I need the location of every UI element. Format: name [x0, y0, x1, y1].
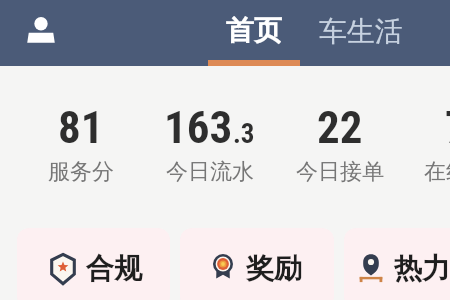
staticText: 热力	[394, 251, 450, 286]
staticText: 服务分	[48, 158, 114, 186]
staticText: 合规	[86, 251, 142, 286]
staticText: 7	[445, 101, 450, 154]
staticText: 今日接单	[296, 158, 384, 186]
staticText: 22	[317, 101, 363, 154]
button[interactable]: 车生活	[308, 0, 414, 66]
button[interactable]: 热力	[344, 228, 450, 300]
staticText: 81	[58, 101, 104, 154]
button[interactable]: 首页	[208, 0, 300, 66]
staticText: 车生活	[319, 14, 403, 49]
staticText: 奖励	[246, 251, 302, 286]
button[interactable]: 合规	[17, 228, 170, 300]
staticText: 首页	[226, 13, 282, 48]
staticText: 163	[164, 101, 233, 154]
staticText: .3	[233, 118, 255, 150]
button[interactable]: 奖励	[180, 228, 334, 300]
staticText: 今日流水	[166, 158, 254, 186]
staticText: 在线时长	[424, 158, 450, 186]
button[interactable]: Profile	[20, 5, 62, 53]
